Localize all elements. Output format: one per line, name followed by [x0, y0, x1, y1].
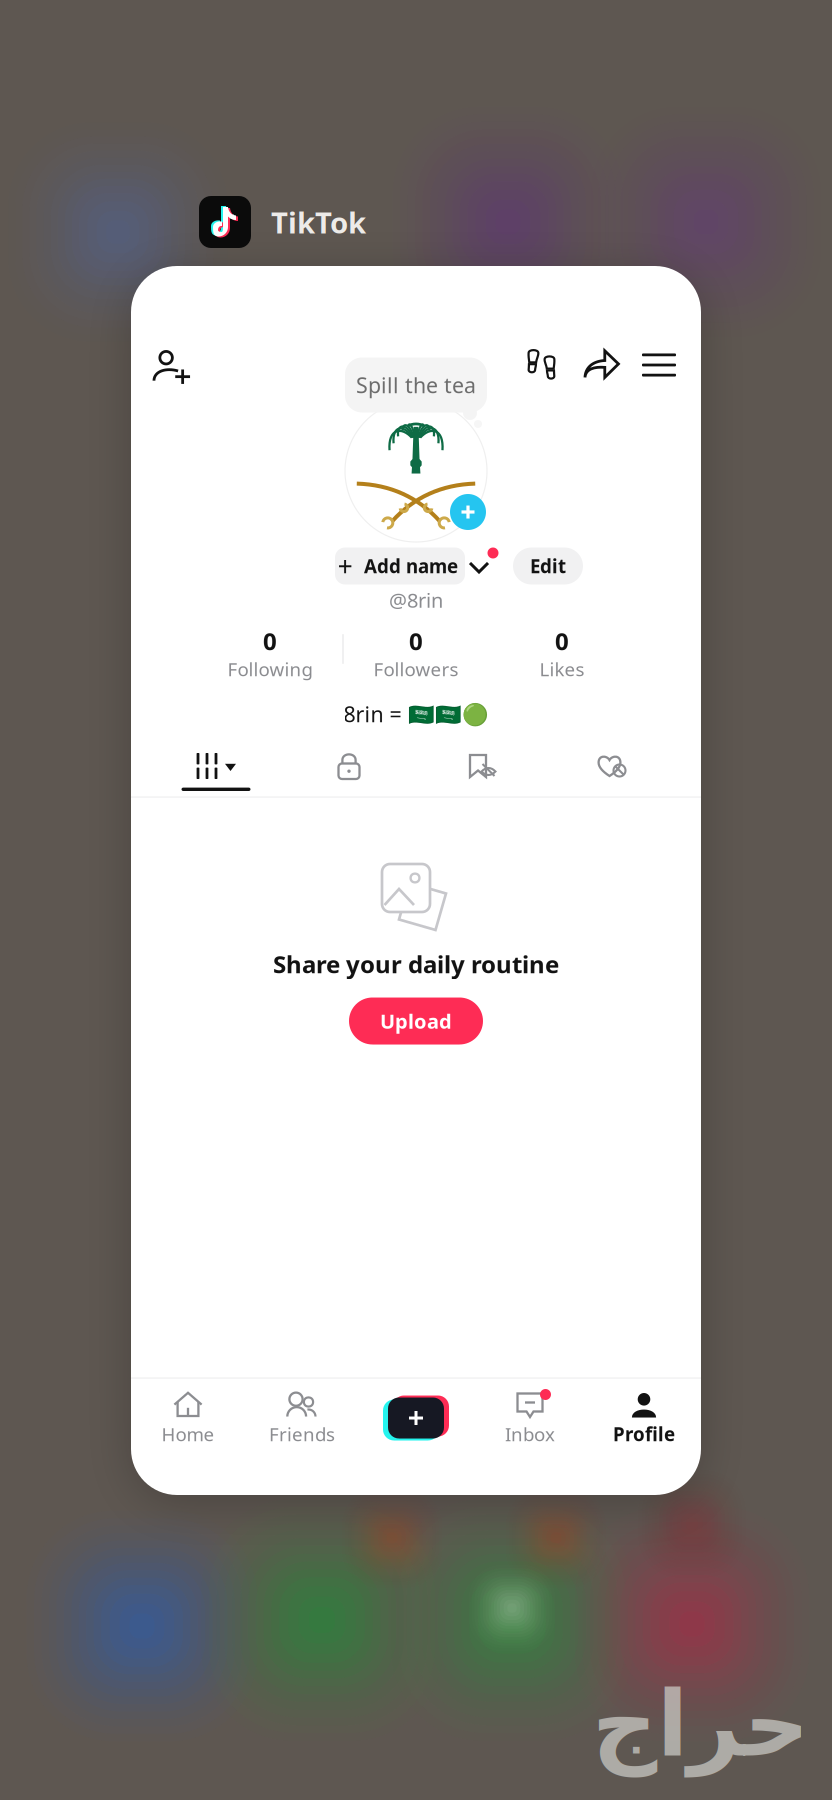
staticText: Inbox: [505, 1422, 555, 1446]
button[interactable]: 0: [200, 622, 340, 686]
button[interactable]: Liked: [546, 735, 679, 797]
staticText: Share your daily routine: [273, 948, 559, 980]
button[interactable]: Create: [359, 1389, 473, 1447]
button[interactable]: Home: [131, 1389, 245, 1447]
staticText: حراج: [591, 1672, 808, 1775]
button[interactable]: Activity: [516, 338, 570, 392]
button[interactable]: 0: [346, 622, 486, 686]
staticText: 0: [263, 625, 277, 657]
staticText: 0: [409, 625, 423, 657]
staticText: @8rin: [389, 587, 443, 613]
staticText: Add name: [364, 554, 458, 578]
staticText: Spill the tea: [356, 371, 476, 399]
button[interactable]: 0: [492, 622, 632, 686]
button[interactable]: Videos: [149, 735, 282, 797]
staticText: TikTok: [271, 202, 366, 241]
staticText: Friends: [269, 1422, 335, 1446]
staticText: Likes: [539, 657, 584, 681]
button[interactable]: Add friends: [142, 337, 202, 397]
button[interactable]: Profile: [587, 1389, 701, 1447]
button[interactable]: Add photo: [450, 494, 486, 530]
button[interactable]: Inbox: [473, 1389, 587, 1447]
button[interactable]: More name options: [464, 550, 500, 586]
button[interactable]: Saved: [417, 735, 550, 797]
staticText: 0: [555, 625, 569, 657]
staticText: +: [337, 548, 358, 584]
button[interactable]: +: [335, 547, 465, 584]
staticText: 8rin = 🇸🇦🇸🇦🟢: [343, 700, 488, 728]
button[interactable]: Upload: [349, 997, 483, 1044]
button[interactable]: Private: [282, 735, 415, 797]
button[interactable]: Friends: [245, 1389, 359, 1447]
staticText: Edit: [530, 554, 566, 578]
button[interactable]: Share profile: [574, 338, 628, 392]
staticText: Home: [161, 1422, 214, 1446]
staticText: Upload: [380, 1008, 452, 1034]
staticText: Followers: [373, 657, 458, 681]
staticText: Profile: [613, 1422, 675, 1446]
button[interactable]: Edit: [513, 547, 583, 584]
staticText: Following: [227, 657, 312, 681]
button[interactable]: Menu: [632, 338, 686, 392]
